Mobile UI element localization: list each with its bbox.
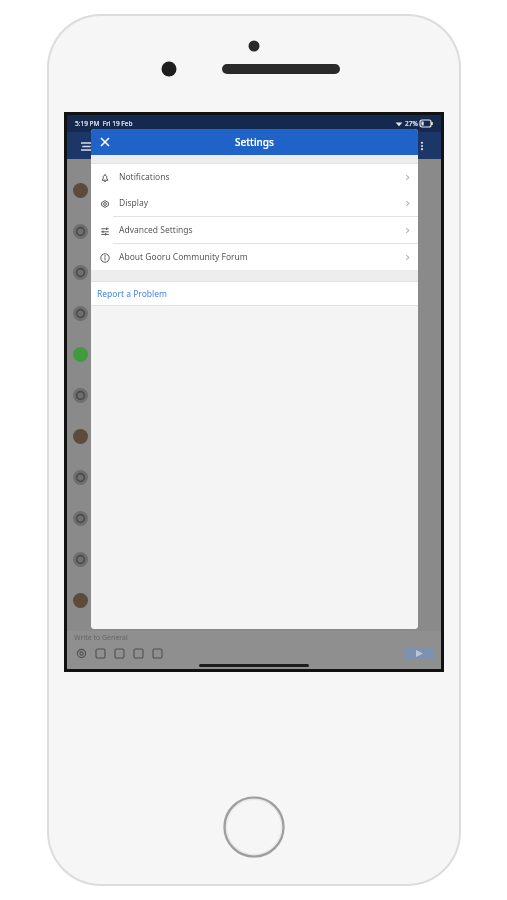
button[interactable]: Open navigation menu (77, 137, 95, 155)
button[interactable]: More options (413, 137, 431, 155)
staticText: Wed, Dec 23, 2020 (67, 165, 441, 175)
button[interactable]: Composer action 5 (150, 646, 164, 660)
button[interactable]: Composer action 1 (74, 646, 88, 660)
button[interactable]: Composer action 4 (131, 646, 145, 660)
button[interactable]: Composer action 3 (112, 646, 126, 660)
staticText: General (101, 139, 138, 153)
staticText: About Gooru Community Forum (119, 251, 248, 263)
button[interactable]: About Gooru Community Forum (91, 244, 418, 270)
button[interactable]: Close (97, 134, 113, 150)
staticText: Display (119, 197, 148, 209)
button[interactable]: Advanced Settings (91, 217, 418, 243)
staticText: Write to General (74, 633, 128, 643)
staticText: Settings (235, 135, 274, 149)
staticText: Notifications (119, 171, 170, 183)
staticText: 5:19 PM Fri 19 Feb (75, 119, 133, 128)
button[interactable]: Send (404, 647, 434, 660)
button[interactable]: Composer action 2 (93, 646, 107, 660)
button[interactable]: Report a Problem (91, 282, 418, 305)
button[interactable]: General (101, 139, 147, 153)
button[interactable]: Display (91, 190, 418, 216)
button[interactable]: Notifications (91, 164, 418, 190)
staticText: 27% (405, 119, 418, 128)
staticText: Advanced Settings (119, 224, 193, 236)
staticText: Report a Problem (97, 288, 168, 300)
button[interactable]: Search (389, 136, 409, 156)
